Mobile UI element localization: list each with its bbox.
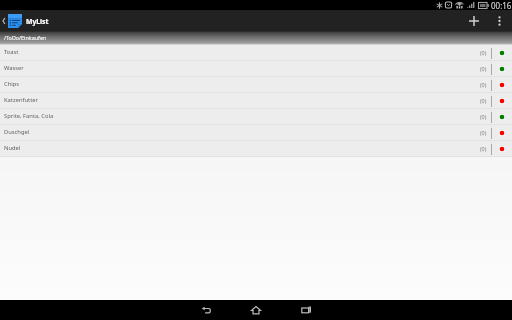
button[interactable]: Back xyxy=(181,300,231,320)
button[interactable]: More options xyxy=(489,10,510,31)
button[interactable]: Home xyxy=(231,300,281,320)
staticText: (0) xyxy=(480,113,487,120)
staticText: (0) xyxy=(480,129,487,136)
staticText: (0) xyxy=(480,81,487,88)
staticText: MyList xyxy=(26,17,49,26)
button[interactable]: Add xyxy=(463,10,484,31)
button[interactable]: Duschgel xyxy=(0,125,512,141)
button[interactable]: Back xyxy=(0,10,8,31)
staticText: (0) xyxy=(480,65,487,72)
button[interactable]: Toast xyxy=(0,45,512,61)
staticText: /ToDo/Einkaufen xyxy=(4,34,47,41)
button[interactable]: Katzenfutter xyxy=(0,93,512,109)
staticText: Toast xyxy=(4,48,19,56)
staticText: 00:16 xyxy=(491,0,512,10)
staticText: (0) xyxy=(480,49,487,56)
staticText: Nudel xyxy=(4,144,21,152)
staticText: Chips xyxy=(4,80,20,88)
button[interactable]: Sprite, Fanta, Cola xyxy=(0,109,512,125)
staticText: Sprite, Fanta, Cola xyxy=(4,112,54,120)
staticText: Duschgel xyxy=(4,128,30,136)
button[interactable]: Recent apps xyxy=(281,300,331,320)
button[interactable]: Chips xyxy=(0,77,512,93)
staticText: (0) xyxy=(480,145,487,152)
staticText: Katzenfutter xyxy=(4,96,38,104)
staticText: (0) xyxy=(480,97,487,104)
staticText: Wasser xyxy=(4,64,24,72)
button[interactable]: Wasser xyxy=(0,61,512,77)
button[interactable]: Nudel xyxy=(0,141,512,157)
